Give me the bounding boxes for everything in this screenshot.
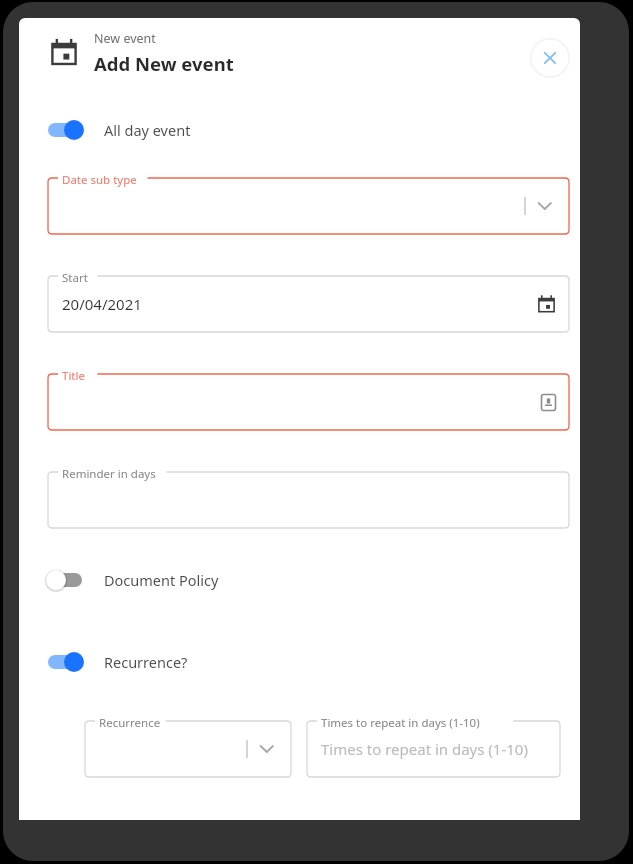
staticText: Date sub type: [62, 172, 137, 188]
staticText: Reminder in days: [62, 466, 156, 482]
button[interactable]: Times to repeat in days (1-10): [307, 721, 560, 777]
button[interactable]: Reminder in days: [48, 472, 569, 528]
button[interactable]: Close: [530, 38, 570, 78]
button[interactable]: Title: [48, 374, 569, 430]
staticText: Times to repeat in days (1-10): [321, 739, 528, 759]
button[interactable]: Date sub type: [48, 178, 569, 234]
button[interactable]: All day event: [48, 118, 560, 142]
staticText: New event: [94, 30, 156, 47]
staticText: Start: [62, 270, 88, 286]
button[interactable]: Recurrence?: [48, 650, 560, 674]
staticText: Document Policy: [104, 570, 219, 590]
staticText: Title: [62, 368, 85, 384]
staticText: Times to repeat in days (1-10): [321, 715, 480, 731]
staticText: All day event: [104, 120, 191, 140]
staticText: Recurrence: [99, 715, 161, 731]
button[interactable]: Recurrence: [85, 721, 291, 777]
button[interactable]: Document Policy: [48, 568, 560, 592]
staticText: Add New event: [94, 51, 234, 76]
staticText: 20/04/2021: [62, 294, 142, 314]
staticText: Recurrence?: [104, 652, 188, 672]
button[interactable]: 20/04/2021: [48, 276, 569, 332]
